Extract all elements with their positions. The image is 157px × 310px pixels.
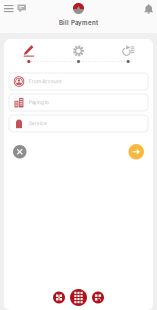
button[interactable]: Keypad	[70, 289, 87, 306]
button[interactable]: Split bill	[53, 291, 65, 303]
staticText: Paying to	[29, 100, 49, 105]
button[interactable]: History	[103, 45, 153, 63]
button[interactable]: Notifications	[144, 4, 153, 14]
button[interactable]: Scan QR code	[92, 291, 104, 303]
button[interactable]: Messages	[17, 4, 26, 13]
button[interactable]: Service	[9, 115, 148, 132]
button[interactable]: Cancel	[13, 145, 26, 158]
staticText: Bill Payment	[59, 19, 98, 26]
button[interactable]: Continue	[128, 144, 144, 159]
button[interactable]: From Account	[9, 73, 148, 90]
staticText: Service	[29, 121, 47, 126]
button[interactable]: Payment details	[4, 45, 54, 63]
button[interactable]: Menu	[4, 5, 13, 12]
staticText: From Account	[29, 79, 61, 84]
button[interactable]: Options	[54, 45, 103, 63]
button[interactable]: Paying to	[9, 94, 148, 111]
